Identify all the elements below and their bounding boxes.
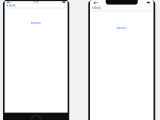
staticText: Back <box>94 6 101 10</box>
button[interactable]: Back <box>5 3 68 8</box>
staticText: Button <box>31 21 41 24</box>
button[interactable]: Button <box>31 21 41 24</box>
staticText: Button <box>117 26 127 29</box>
staticText: Back <box>9 4 16 7</box>
button[interactable]: Back <box>90 5 153 11</box>
button[interactable]: Button <box>117 26 127 29</box>
staticText: 9:41 <box>33 0 40 4</box>
